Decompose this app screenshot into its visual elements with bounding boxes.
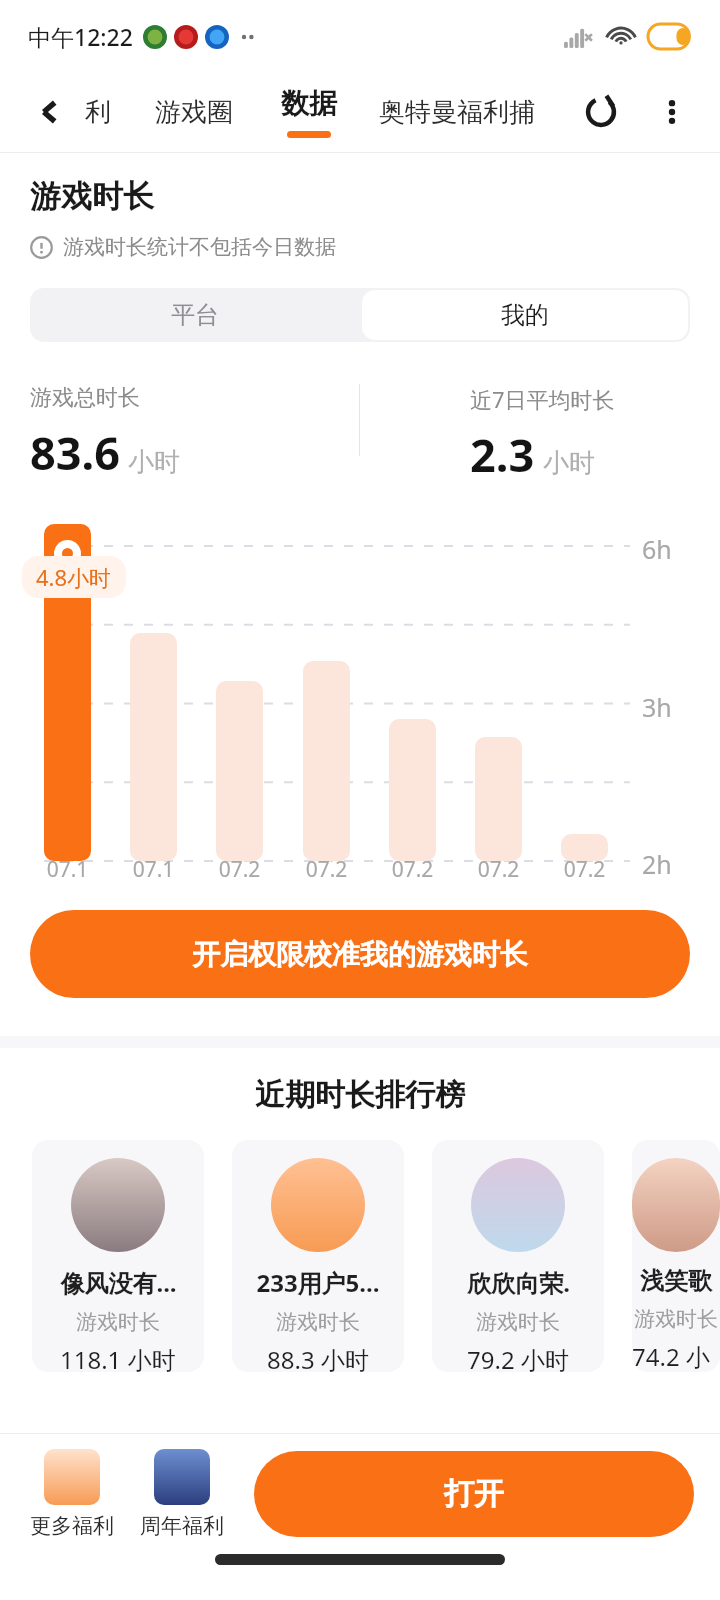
staticText: 游戏时长: [276, 1309, 360, 1335]
staticText: 4.8小时: [36, 562, 112, 592]
staticText: 小时: [128, 446, 180, 479]
staticText: 我的: [501, 300, 549, 330]
staticText: 更多福利: [30, 1513, 114, 1539]
button[interactable]: [44, 524, 91, 861]
staticText: 6h: [642, 532, 672, 566]
button[interactable]: 奥特曼福利捕: [364, 72, 549, 152]
button[interactable]: 打开: [254, 1451, 694, 1537]
staticText: 07.20: [216, 855, 263, 884]
button[interactable]: 周年福利: [136, 1449, 228, 1539]
button[interactable]: [303, 661, 350, 861]
staticText: 中午12:22: [28, 21, 133, 52]
staticText: 小时: [543, 447, 595, 480]
staticText: 3h: [642, 690, 672, 724]
button[interactable]: 像风没有...: [32, 1140, 204, 1372]
staticText: 像风没有...: [60, 1266, 177, 1299]
staticText: 近期时长排行榜: [0, 1076, 720, 1114]
staticText: 游戏时长统计不包括今日数据: [63, 234, 336, 260]
button[interactable]: Back: [30, 92, 70, 132]
staticText: 233用户5...: [256, 1266, 380, 1299]
staticText: 07.24: [561, 855, 608, 884]
staticText: 83.6: [30, 422, 120, 483]
staticText: 游戏时长: [476, 1309, 560, 1335]
button[interactable]: 浅笑歌: [632, 1140, 720, 1372]
button[interactable]: 233用户5...: [232, 1140, 404, 1372]
button[interactable]: 游戏圈: [134, 72, 254, 152]
button[interactable]: 开启权限校准我的游戏时长: [30, 910, 690, 998]
button[interactable]: [561, 834, 608, 861]
button[interactable]: [389, 719, 436, 861]
staticText: 近7日平均时长: [470, 384, 615, 414]
staticText: 07.21: [303, 855, 350, 884]
button[interactable]: 更多福利: [26, 1449, 118, 1539]
staticText: 奥特曼福利捕: [379, 96, 535, 129]
button[interactable]: 欣欣向荣.: [432, 1140, 604, 1372]
button[interactable]: Refresh: [578, 89, 624, 135]
staticText: 欣欣向荣.: [467, 1266, 570, 1299]
staticText: 游戏总时长: [30, 384, 140, 412]
button[interactable]: 利: [62, 72, 134, 152]
staticText: 07.18: [44, 855, 91, 884]
staticText: 07.22: [389, 855, 436, 884]
staticText: 88.3 小时: [267, 1343, 369, 1372]
staticText: 数据: [281, 86, 337, 121]
button[interactable]: [475, 737, 522, 861]
staticText: 2.3: [470, 424, 535, 484]
staticText: 平台: [171, 300, 219, 330]
staticText: 游戏圈: [155, 96, 233, 129]
button[interactable]: More options: [650, 90, 694, 134]
staticText: 79.2 小时: [467, 1343, 569, 1372]
staticText: 打开: [444, 1475, 504, 1513]
staticText: 游戏时长: [76, 1309, 160, 1335]
staticText: 浅笑歌: [640, 1266, 712, 1296]
staticText: 游戏时长: [634, 1306, 718, 1332]
staticText: 开启权限校准我的游戏时长: [192, 937, 528, 972]
staticText: 07.19: [130, 855, 177, 884]
staticText: 07.23: [475, 855, 522, 884]
button[interactable]: 平台: [30, 288, 360, 342]
staticText: 2h: [642, 847, 672, 881]
button[interactable]: 我的: [362, 290, 688, 340]
staticText: 利: [85, 96, 111, 129]
staticText: 74.2 小时: [632, 1340, 720, 1372]
button[interactable]: [216, 681, 263, 861]
staticText: 游戏时长: [30, 177, 154, 216]
button[interactable]: 数据: [254, 72, 364, 152]
staticText: 周年福利: [140, 1513, 224, 1539]
staticText: 118.1 小时: [60, 1343, 176, 1372]
